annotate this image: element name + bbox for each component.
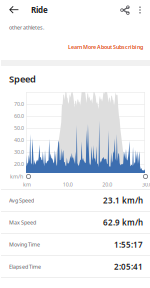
staticText: 50.0: [14, 124, 24, 132]
staticText: 60.0: [14, 112, 24, 120]
staticText: km/h: [10, 173, 23, 180]
staticText: 20.0: [102, 181, 112, 188]
button[interactable]: Avg Speed: [1, 190, 150, 212]
staticText: 62.9 km/h: [103, 217, 143, 228]
button[interactable]: Moving Time: [1, 234, 150, 256]
staticText: 1:55:17: [114, 239, 143, 250]
staticText: 20.0: [14, 160, 24, 168]
button[interactable]: More options: [133, 1, 147, 19]
staticText: Speed: [9, 73, 36, 85]
staticText: Avg Speed: [9, 197, 34, 204]
button[interactable]: Back: [5, 1, 23, 19]
button[interactable]: Max Speed: [1, 212, 150, 234]
staticText: 40.0: [14, 136, 24, 144]
staticText: 70.0: [14, 100, 24, 108]
button[interactable]: Learn More About Subscribing: [68, 43, 143, 51]
staticText: 30.0: [14, 148, 24, 156]
staticText: Max Speed: [9, 219, 36, 226]
staticText: Ride: [31, 5, 48, 15]
staticText: Learn More About Subscribing: [68, 43, 143, 51]
staticText: 23.1 km/h: [103, 195, 143, 206]
button[interactable]: Share: [117, 1, 133, 19]
staticText: 2:05:41: [114, 261, 143, 272]
staticText: 10.0: [63, 181, 73, 188]
staticText: 30.0: [142, 181, 150, 188]
staticText: other athletes.: [9, 24, 44, 31]
staticText: km: [23, 181, 31, 188]
staticText: Elapsed Time: [9, 263, 41, 270]
staticText: Moving Time: [9, 241, 40, 248]
button[interactable]: Elapsed Time: [1, 256, 150, 278]
